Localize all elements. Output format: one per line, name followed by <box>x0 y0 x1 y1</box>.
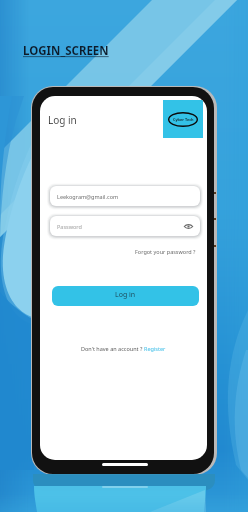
button[interactable]: Log in <box>52 286 199 306</box>
staticText: Password <box>57 223 82 230</box>
button[interactable]: Show password <box>184 222 193 231</box>
staticText: Log in <box>48 113 77 127</box>
button[interactable]: Password <box>50 216 200 236</box>
staticText: Log in <box>115 290 136 300</box>
staticText: LOGIN_SCREEN <box>23 43 109 59</box>
staticText: Leekogram@gmail.com <box>57 193 119 200</box>
staticText: Forgot your password ? <box>135 248 196 255</box>
staticText: Cyber Tech <box>173 117 194 122</box>
button[interactable]: Forgot your password ? <box>126 245 196 257</box>
button[interactable]: Logo <box>163 100 203 138</box>
button[interactable]: Leekogram@gmail.com <box>50 186 200 206</box>
staticText: Don't have an account ? <box>81 345 144 352</box>
button[interactable]: Register <box>144 345 166 352</box>
